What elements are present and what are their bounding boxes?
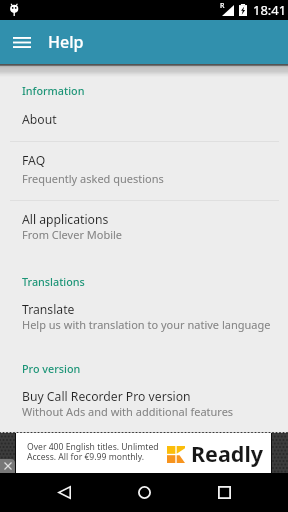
staticText: R <box>220 1 225 11</box>
staticText: About <box>22 111 57 128</box>
button[interactable]: Close ad <box>0 459 15 473</box>
staticText: Information <box>22 83 85 98</box>
button[interactable]: Back <box>44 473 84 512</box>
staticText: Without Ads and with additional features <box>22 404 234 419</box>
staticText: Frequently asked questions <box>22 171 164 186</box>
staticText: Help <box>48 31 84 53</box>
staticText: Pro version <box>22 361 81 376</box>
staticText: 18:41 <box>253 1 287 19</box>
button[interactable]: Recent apps <box>204 473 244 512</box>
staticText: Access. All for €9.99 monthly. <box>27 451 145 463</box>
staticText: Help us with translation to your native … <box>22 317 271 332</box>
staticText: FAQ <box>22 152 46 169</box>
staticText: From Clever Mobile <box>22 227 123 242</box>
button[interactable]: Open navigation menu <box>0 20 44 64</box>
button: Information <box>22 83 85 98</box>
staticText: All applications <box>22 211 109 228</box>
button: Translations <box>22 274 85 289</box>
button[interactable]: Over 400 English titles. Unlimted <box>16 433 271 473</box>
staticText: Translate <box>22 301 75 318</box>
staticText: Readly <box>191 439 264 468</box>
staticText: Translations <box>22 274 85 289</box>
staticText: Buy Call Recorder Pro version <box>22 388 191 405</box>
button: Pro version <box>22 361 81 376</box>
button[interactable]: Home <box>124 473 164 512</box>
staticText: Over 400 English titles. Unlimted <box>27 441 159 453</box>
